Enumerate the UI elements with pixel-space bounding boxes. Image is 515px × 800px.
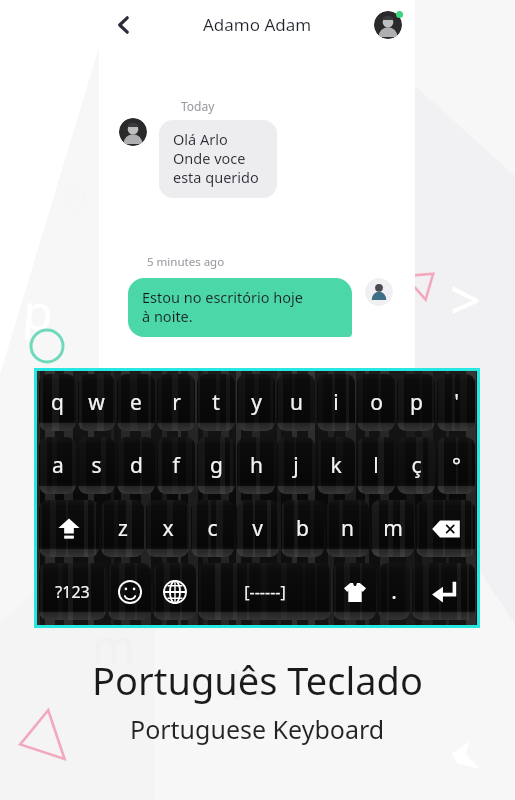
- button[interactable]: v: [236, 500, 279, 557]
- staticText: n: [341, 514, 354, 543]
- staticText: Portuguese Keyboard: [130, 712, 385, 746]
- staticText: v: [252, 514, 263, 543]
- staticText: j: [293, 451, 299, 480]
- staticText: b: [296, 514, 309, 543]
- staticText: d: [130, 451, 143, 480]
- button[interactable]: [------]: [198, 563, 331, 620]
- staticText: q: [51, 388, 64, 417]
- button[interactable]: u: [277, 374, 315, 431]
- button[interactable]: d: [117, 437, 155, 494]
- staticText: f: [172, 451, 180, 480]
- button[interactable]: l: [357, 437, 395, 494]
- button[interactable]: Back: [105, 6, 143, 44]
- button[interactable]: r: [157, 374, 195, 431]
- staticText: °: [452, 451, 461, 480]
- button[interactable]: t: [197, 374, 235, 431]
- staticText: >: [450, 262, 481, 336]
- button[interactable]: °: [437, 437, 475, 494]
- button[interactable]: Shift: [39, 500, 99, 557]
- button[interactable]: i: [317, 374, 355, 431]
- staticText: s: [91, 451, 102, 480]
- button[interactable]: Backspace: [416, 500, 475, 557]
- staticText: o: [370, 388, 383, 417]
- button[interactable]: y: [237, 374, 275, 431]
- button[interactable]: ?123: [39, 563, 106, 620]
- staticText: r: [172, 388, 181, 417]
- staticText: w: [88, 388, 105, 417]
- button[interactable]: Estou no escritório hoje à noite.: [128, 278, 352, 337]
- staticText: [------]: [244, 581, 286, 603]
- button[interactable]: b: [281, 500, 324, 557]
- staticText: Estou no escritório hoje à noite.: [142, 287, 303, 326]
- staticText: k: [330, 451, 342, 480]
- staticText: p: [410, 388, 423, 417]
- button[interactable]: p: [397, 374, 435, 431]
- staticText: ç: [411, 451, 422, 480]
- button[interactable]: Olá Arlo Onde voce esta querido: [159, 120, 277, 198]
- button[interactable]: k: [317, 437, 355, 494]
- button[interactable]: s: [78, 437, 115, 494]
- button[interactable]: g: [197, 437, 235, 494]
- staticText: Today: [181, 98, 215, 114]
- staticText: g: [210, 451, 223, 480]
- button[interactable]: x: [146, 500, 189, 557]
- button[interactable]: Profile: [371, 8, 405, 42]
- button[interactable]: Enter: [412, 563, 475, 620]
- staticText: ': [454, 388, 459, 417]
- button[interactable]: Themes: [333, 563, 376, 620]
- staticText: Olá Arlo Onde voce esta querido: [173, 129, 259, 187]
- button[interactable]: w: [78, 374, 115, 431]
- button[interactable]: q: [39, 374, 76, 431]
- button[interactable]: n: [326, 500, 369, 557]
- button[interactable]: c: [191, 500, 234, 557]
- staticText: z: [118, 514, 128, 543]
- button[interactable]: f: [157, 437, 195, 494]
- staticText: c: [207, 514, 218, 543]
- staticText: i: [333, 388, 339, 417]
- button[interactable]: m: [371, 500, 414, 557]
- staticText: Adamo Adam: [203, 13, 312, 36]
- staticText: a: [52, 451, 64, 480]
- staticText: y: [251, 388, 262, 417]
- staticText: u: [290, 388, 303, 417]
- staticText: h: [250, 451, 263, 480]
- button[interactable]: h: [237, 437, 275, 494]
- button[interactable]: .: [378, 563, 410, 620]
- button[interactable]: e: [117, 374, 155, 431]
- staticText: m: [383, 514, 403, 543]
- button[interactable]: Language: [153, 563, 196, 620]
- staticText: n: [230, 640, 265, 716]
- button[interactable]: Emoji: [108, 563, 151, 620]
- staticText: ?123: [55, 581, 90, 603]
- button[interactable]: z: [101, 500, 144, 557]
- staticText: l: [373, 451, 379, 480]
- button[interactable]: a: [39, 437, 76, 494]
- staticText: m: [92, 614, 136, 677]
- button[interactable]: o: [357, 374, 395, 431]
- staticText: x: [162, 514, 174, 543]
- staticText: t: [212, 388, 220, 417]
- staticText: e: [130, 388, 142, 417]
- staticText: d: [19, 289, 55, 356]
- button[interactable]: ç: [397, 437, 435, 494]
- button[interactable]: j: [277, 437, 315, 494]
- button[interactable]: ': [437, 374, 475, 431]
- staticText: .: [391, 577, 397, 606]
- staticText: Português Teclado: [92, 654, 423, 706]
- staticText: 5 minutes ago: [147, 254, 225, 270]
